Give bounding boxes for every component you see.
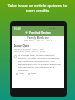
staticText: 10:30 <box>14 27 21 31</box>
staticText: True <box>19 72 24 75</box>
staticText: Original Release: Mar 1, 2021 <box>14 48 45 51</box>
other: App logo <box>25 31 28 34</box>
staticText: Practical Review <box>29 31 51 35</box>
button[interactable]: False <box>28 72 37 75</box>
staticText: In a review study of adult headache pati… <box>18 54 62 72</box>
button[interactable]: True <box>16 72 24 75</box>
staticText: Take issue or article quizzes to earn cr… <box>5 3 70 13</box>
staticText: False <box>31 72 37 75</box>
staticText: Issue Quiz <box>14 44 29 48</box>
staticText: Family Medicine <box>12 36 64 40</box>
button[interactable]: App logo <box>12 30 64 35</box>
staticText: Expiration Date: Mar 31, 2022 <box>14 50 45 53</box>
staticText: May 2021 · Vol. 21 · No. 5 <box>12 39 64 42</box>
